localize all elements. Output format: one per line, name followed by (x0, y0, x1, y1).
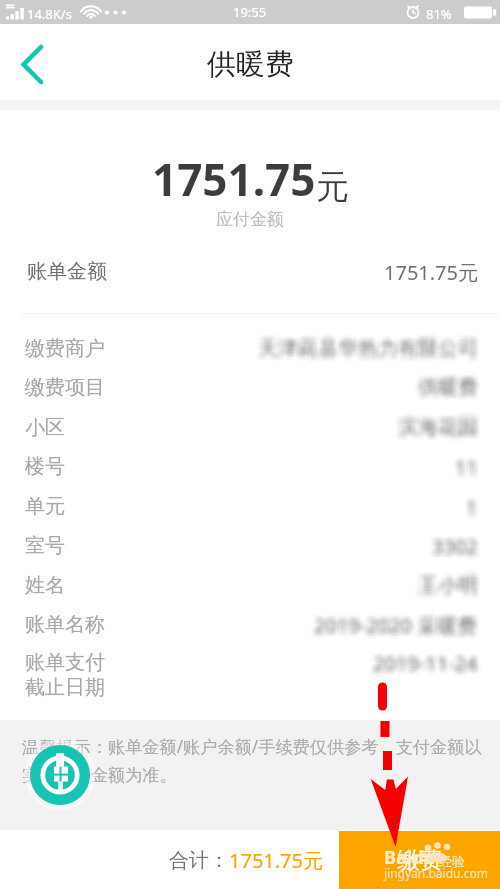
staticText: 2019-2020 采暖费 (313, 618, 477, 645)
staticText: 天津蒓县华热力有限公司 (259, 343, 479, 368)
staticText: 1 (461, 499, 473, 526)
staticText: 2019-2020 采暖费 (310, 608, 474, 635)
staticText: 供暖费 (423, 380, 483, 405)
staticText: 3302 (433, 530, 479, 557)
staticText: 天津蒓县华热力有限公司 (263, 342, 483, 367)
staticText: 2019-2020 采暖费 (314, 610, 478, 637)
staticText: 供暖费 (414, 377, 474, 402)
staticText: 王小明 (417, 575, 477, 600)
staticText: 1 (468, 501, 480, 528)
staticText: 2019-11-24 (376, 649, 481, 676)
staticText: 2019-2020 采暖费 (309, 616, 473, 643)
staticText: 天津蒓县华热力有限公司 (253, 332, 473, 357)
staticText: 1 (465, 487, 477, 514)
staticText: 2019-2020 采暖费 (312, 610, 476, 637)
staticText: 3302 (429, 528, 475, 555)
staticText: 温馨提示：账单金额/账户余额/手续费仅供参考，支付金额以实际应付金额为准。 (22, 735, 483, 786)
staticText: 11 (458, 460, 481, 487)
staticText: 3302 (436, 537, 482, 564)
staticText: 供暖费 (422, 370, 482, 395)
staticText: 供暖费 (419, 373, 479, 398)
staticText: 王小明 (411, 575, 471, 600)
staticText: 供暖费 (411, 374, 471, 399)
staticText: 1 (469, 497, 481, 524)
staticText: 2019-11-24 (368, 649, 473, 676)
staticText: 2019-2020 采暖费 (317, 617, 481, 644)
staticText: 11 (453, 449, 476, 476)
staticText: Baidu (384, 845, 436, 870)
staticText: 11 (453, 450, 476, 477)
staticText: 天津蒓县华热力有限公司 (257, 335, 477, 360)
button[interactable]: 缴费 (339, 831, 500, 889)
staticText: 供暖费 (412, 373, 472, 398)
staticText: 3302 (437, 528, 483, 555)
staticText: 王小明 (416, 567, 476, 592)
staticText: 2019-11-24 (374, 650, 479, 677)
staticText: 供暖费 (423, 382, 483, 407)
staticText: 2019-2020 采暖费 (314, 617, 478, 644)
staticText: 滨海花园 (401, 420, 481, 445)
staticText: 3302 (432, 530, 478, 557)
staticText: 1 (465, 494, 477, 521)
staticText: 3302 (429, 530, 475, 557)
staticText: 天津蒓县华热力有限公司 (253, 330, 473, 355)
staticText: 3302 (425, 530, 471, 557)
staticText: 王小明 (422, 570, 482, 595)
staticText: 天津蒓县华热力有限公司 (263, 329, 483, 354)
staticText: 3302 (427, 526, 473, 553)
staticText: 3302 (438, 535, 484, 562)
staticText: 王小明 (415, 567, 475, 592)
button[interactable]: Assistant (24, 739, 96, 811)
staticText: 天津蒓县华热力有限公司 (251, 335, 471, 360)
staticText: 2019-2020 采暖费 (307, 617, 471, 644)
button[interactable]: Back (0, 33, 62, 95)
staticText: 王小明 (418, 566, 478, 591)
staticText: 2019-2020 采暖费 (308, 612, 472, 639)
staticText: 11 (459, 458, 482, 485)
staticText: 滨海花园 (392, 421, 472, 446)
staticText: 2019-11-24 (374, 657, 479, 684)
staticText: 滨海花园 (401, 410, 481, 435)
staticText: 2019-2020 采暖费 (311, 607, 475, 634)
staticText: 11 (458, 453, 481, 480)
staticText: 王小明 (421, 569, 481, 594)
staticText: 3302 (431, 526, 477, 553)
staticText: 滨海花园 (399, 415, 479, 440)
staticText: 3302 (432, 536, 478, 563)
staticText: 王小明 (419, 574, 479, 599)
staticText: 王小明 (419, 576, 479, 601)
staticText: 王小明 (411, 571, 471, 596)
staticText: 天津蒓县华热力有限公司 (265, 339, 485, 364)
staticText: 11 (455, 452, 478, 479)
staticText: 3302 (439, 537, 485, 564)
staticText: 2019-2020 采暖费 (320, 611, 484, 638)
staticText: 2019-11-24 (380, 649, 485, 676)
staticText: 供暖费 (412, 370, 472, 395)
staticText: 滨海花园 (400, 413, 480, 438)
staticText: 2019-11-24 (370, 650, 475, 677)
staticText: 2019-2020 采暖费 (315, 616, 479, 643)
staticText: 3302 (432, 535, 478, 562)
staticText: 2019-2020 采暖费 (310, 612, 474, 639)
staticText: 供暖费 (425, 371, 485, 396)
staticText: 1 (467, 495, 479, 522)
staticText: 2019-11-24 (371, 646, 476, 673)
staticText: 2019-2020 采暖费 (313, 614, 477, 641)
staticText: 2019-2020 采暖费 (309, 606, 473, 633)
staticText: 王小明 (411, 569, 471, 594)
staticText: 天津蒓县华热力有限公司 (263, 331, 483, 356)
staticText: 天津蒓县华热力有限公司 (264, 337, 484, 362)
staticText: 3302 (426, 527, 472, 554)
staticText: 3302 (437, 531, 483, 558)
staticText: 3302 (438, 527, 484, 554)
staticText: 天津蒓县华热力有限公司 (265, 331, 485, 356)
staticText: 滨海花园 (398, 408, 478, 433)
staticText: 天津蒓县华热力有限公司 (255, 336, 475, 361)
staticText: 天津蒓县华热力有限公司 (261, 338, 481, 363)
staticText: 2019-11-24 (372, 644, 477, 671)
staticText: 元 (316, 166, 349, 208)
staticText: 滨海花园 (398, 412, 478, 437)
staticText: 天津蒓县华热力有限公司 (251, 339, 471, 364)
staticText: 2019-11-24 (366, 649, 471, 676)
staticText: 王小明 (423, 572, 483, 597)
